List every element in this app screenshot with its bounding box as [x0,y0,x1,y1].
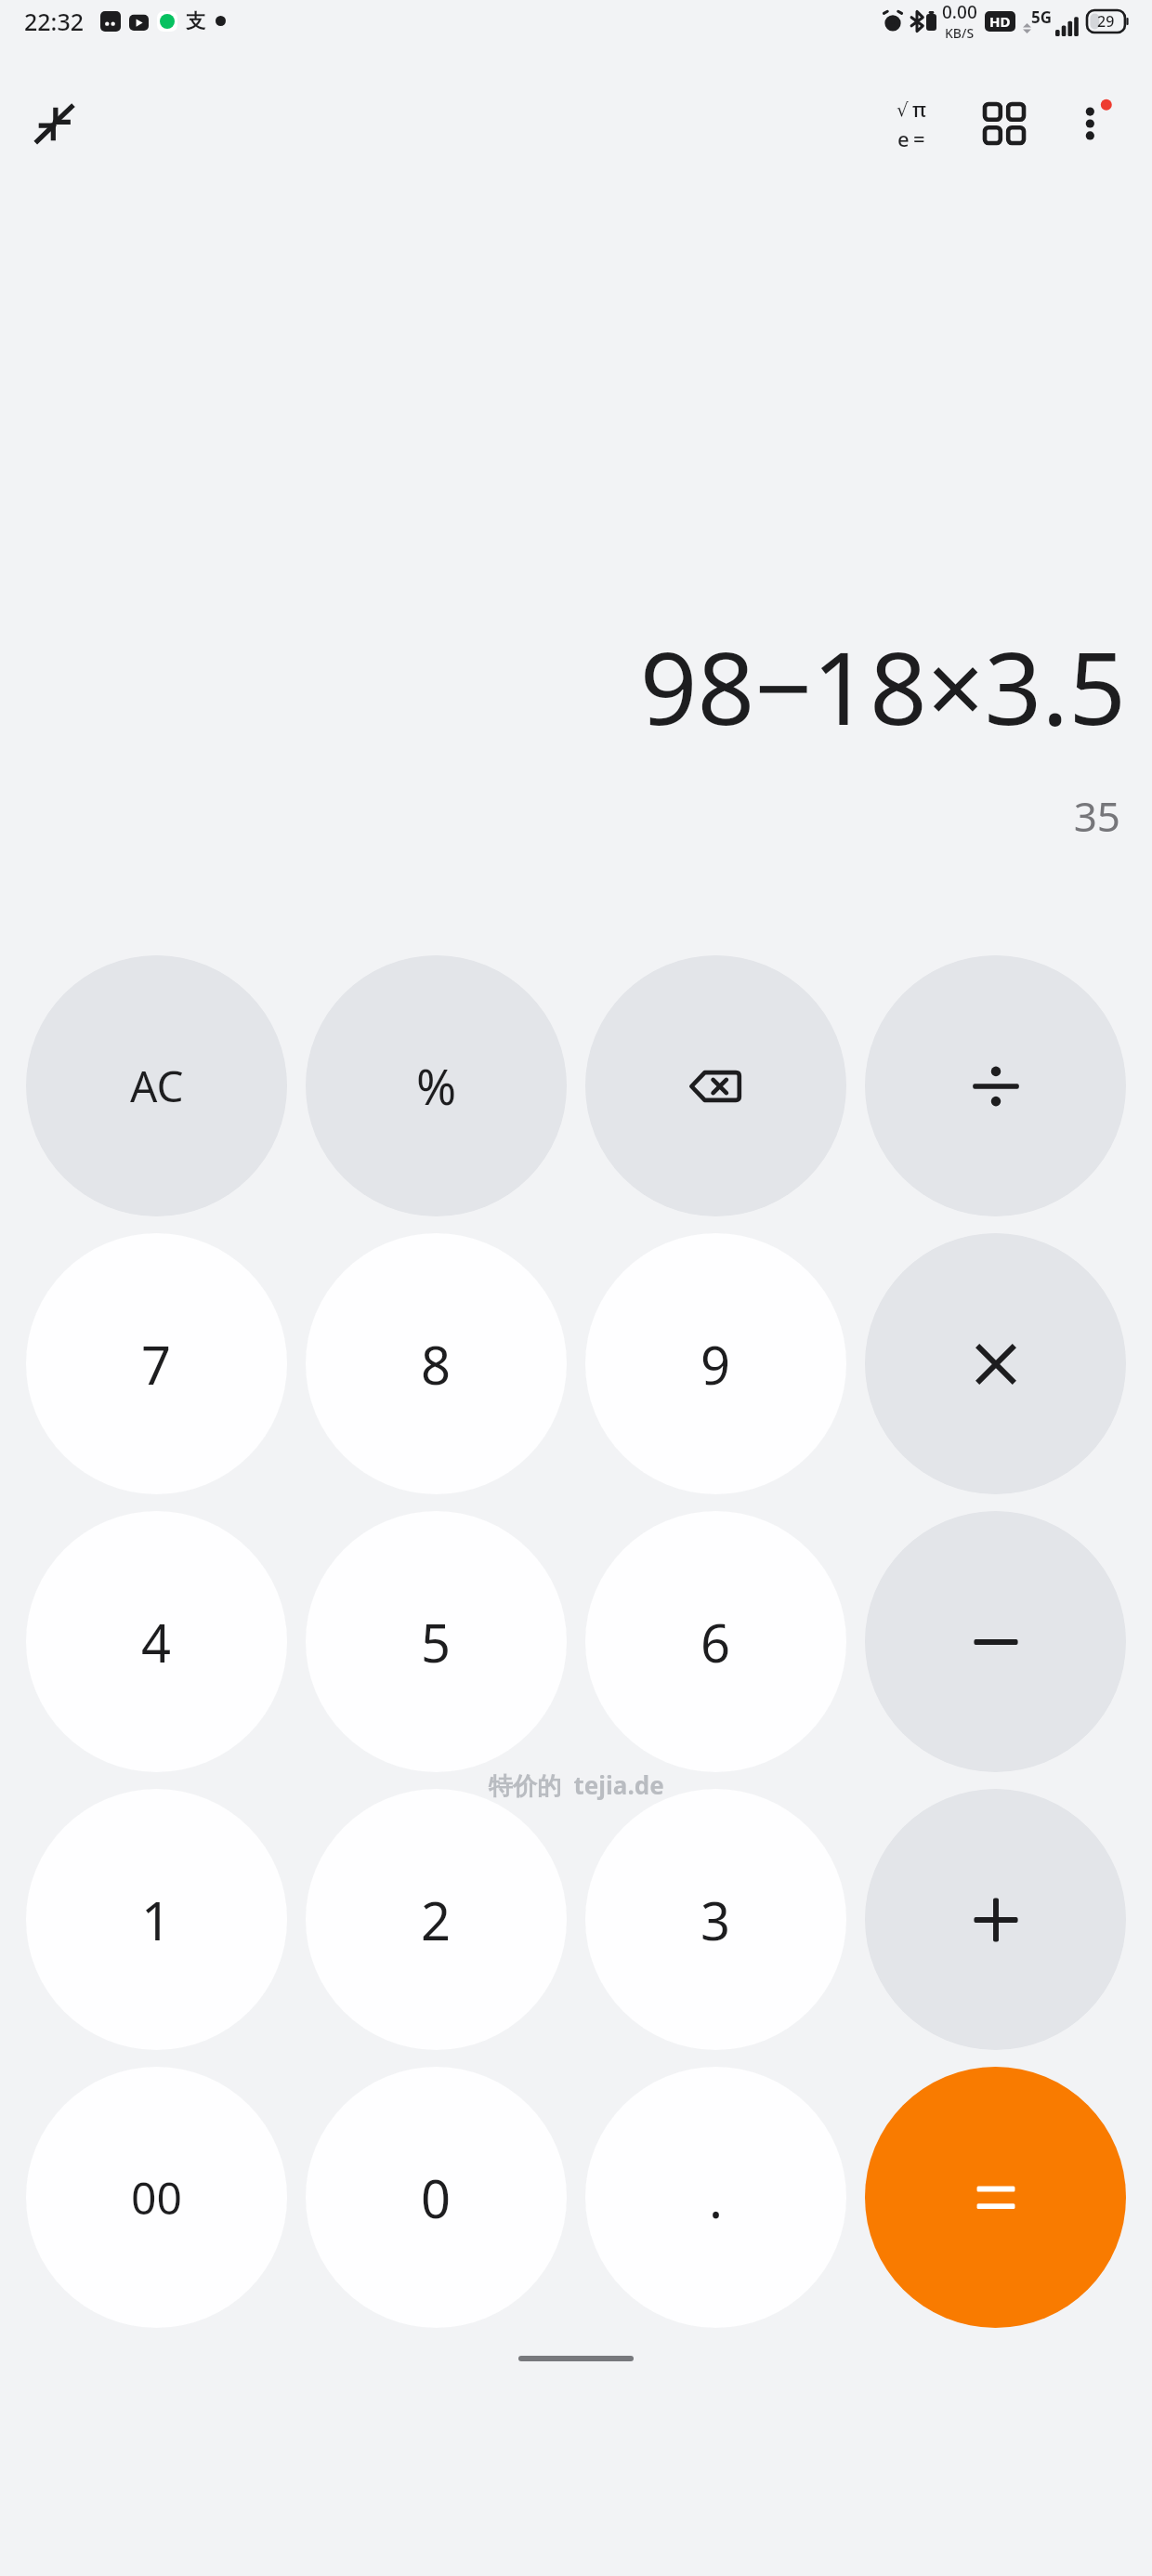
staticText: 4 [141,1607,172,1677]
button[interactable]: 2 [306,1789,567,2050]
button[interactable]: 1 [26,1789,287,2050]
staticText: 9 [700,1329,731,1400]
button[interactable]: 9 [585,1233,846,1494]
button[interactable]: 3 [585,1789,846,2050]
button[interactable]: Scientific [873,85,949,162]
staticText: π [912,95,926,123]
staticText: 0.00 [942,0,977,24]
button[interactable]: 7 [26,1233,287,1494]
staticText: KB/S [945,24,975,42]
staticText: AC [130,1057,184,1115]
button[interactable]: More options [1055,85,1132,162]
staticText: 98−18×3.5 [639,618,1126,755]
staticText: 8 [421,1329,452,1400]
button[interactable]: 4 [26,1511,287,1772]
button[interactable]: 0 [306,2067,567,2328]
staticText: . [709,2162,724,2233]
button[interactable]: Plus [865,1789,1126,2050]
button[interactable]: Divide [865,955,1126,1216]
staticText: 22:32 [24,6,85,37]
button[interactable]: 5 [306,1511,567,1772]
staticText: 特价的 tejia.de [489,1768,664,1802]
button[interactable]: 8 [306,1233,567,1494]
staticText: 3 [700,1885,731,1955]
staticText: 5G [1031,7,1053,28]
staticText: HD [989,12,1011,31]
button[interactable]: % [306,955,567,1216]
staticText: = [913,125,925,152]
button[interactable]: AC [26,955,287,1216]
staticText: 2 [421,1885,452,1955]
staticText: 5 [421,1607,452,1677]
button[interactable]: Backspace [585,955,846,1216]
staticText: 支 [186,9,205,33]
staticText: 7 [141,1329,172,1400]
staticText: 35 [1073,788,1120,844]
staticText: 6 [700,1607,731,1677]
button[interactable]: 00 [26,2067,287,2328]
button[interactable]: Equals [865,2067,1126,2328]
staticText: % [416,1053,457,1119]
button[interactable]: 6 [585,1511,846,1772]
staticText: 0 [421,2162,452,2233]
button[interactable]: Collapse [20,89,89,158]
staticText: 00 [131,2167,182,2228]
staticText: √ [897,99,909,120]
button[interactable]: Multiply [865,1233,1126,1494]
staticText: 1 [141,1885,172,1955]
button[interactable]: . [585,2067,846,2328]
staticText: 29 [1097,11,1115,32]
button[interactable]: Minus [865,1511,1126,1772]
button[interactable]: Unit converter [966,85,1042,162]
staticText: e [897,125,910,152]
